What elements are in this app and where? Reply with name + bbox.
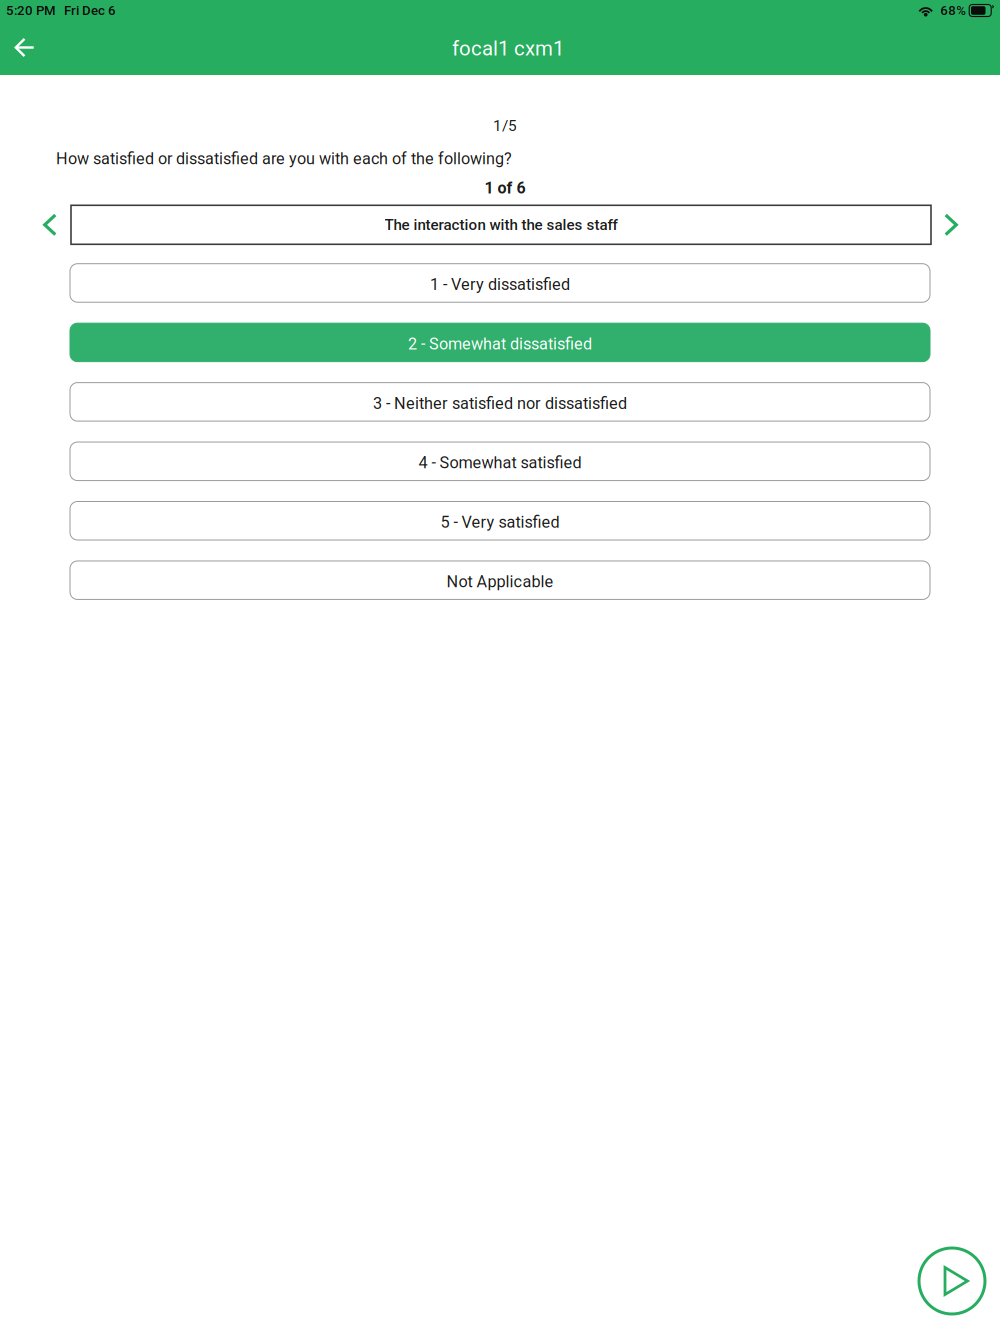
staticText: Fri Dec 6 bbox=[64, 3, 116, 18]
staticText: 1/5 bbox=[493, 117, 517, 135]
button[interactable]: 5 - Very satisfied bbox=[70, 501, 930, 540]
staticText: How satisfied or dissatisfied are you wi… bbox=[56, 149, 512, 168]
staticText: The interaction with the sales staff bbox=[384, 216, 617, 234]
staticText: 1 of 6 bbox=[484, 179, 525, 197]
button[interactable]: Next item bbox=[938, 205, 964, 244]
staticText: 5:20 PM bbox=[6, 3, 56, 18]
button[interactable]: Not Applicable bbox=[70, 561, 930, 599]
button[interactable]: 4 - Somewhat satisfied bbox=[70, 442, 930, 481]
button[interactable]: Back bbox=[0, 22, 49, 77]
staticText: 5 - Very satisfied bbox=[440, 513, 559, 532]
staticText: 3 - Neither satisfied nor dissatisfied bbox=[373, 394, 627, 413]
staticText: Not Applicable bbox=[446, 572, 553, 591]
button[interactable]: Previous item bbox=[37, 205, 63, 244]
staticText: 68% bbox=[940, 3, 966, 18]
button[interactable]: Play bbox=[919, 1248, 985, 1314]
staticText: focal1 cxm1 bbox=[452, 36, 564, 60]
staticText: 4 - Somewhat satisfied bbox=[418, 453, 581, 472]
button[interactable]: 3 - Neither satisfied nor dissatisfied bbox=[70, 383, 930, 421]
button[interactable]: 1 - Very dissatisfied bbox=[70, 264, 930, 302]
staticText: 1 - Very dissatisfied bbox=[430, 275, 570, 294]
staticText: 2 - Somewhat dissatisfied bbox=[408, 334, 592, 353]
button[interactable]: 2 - Somewhat dissatisfied bbox=[70, 323, 930, 362]
